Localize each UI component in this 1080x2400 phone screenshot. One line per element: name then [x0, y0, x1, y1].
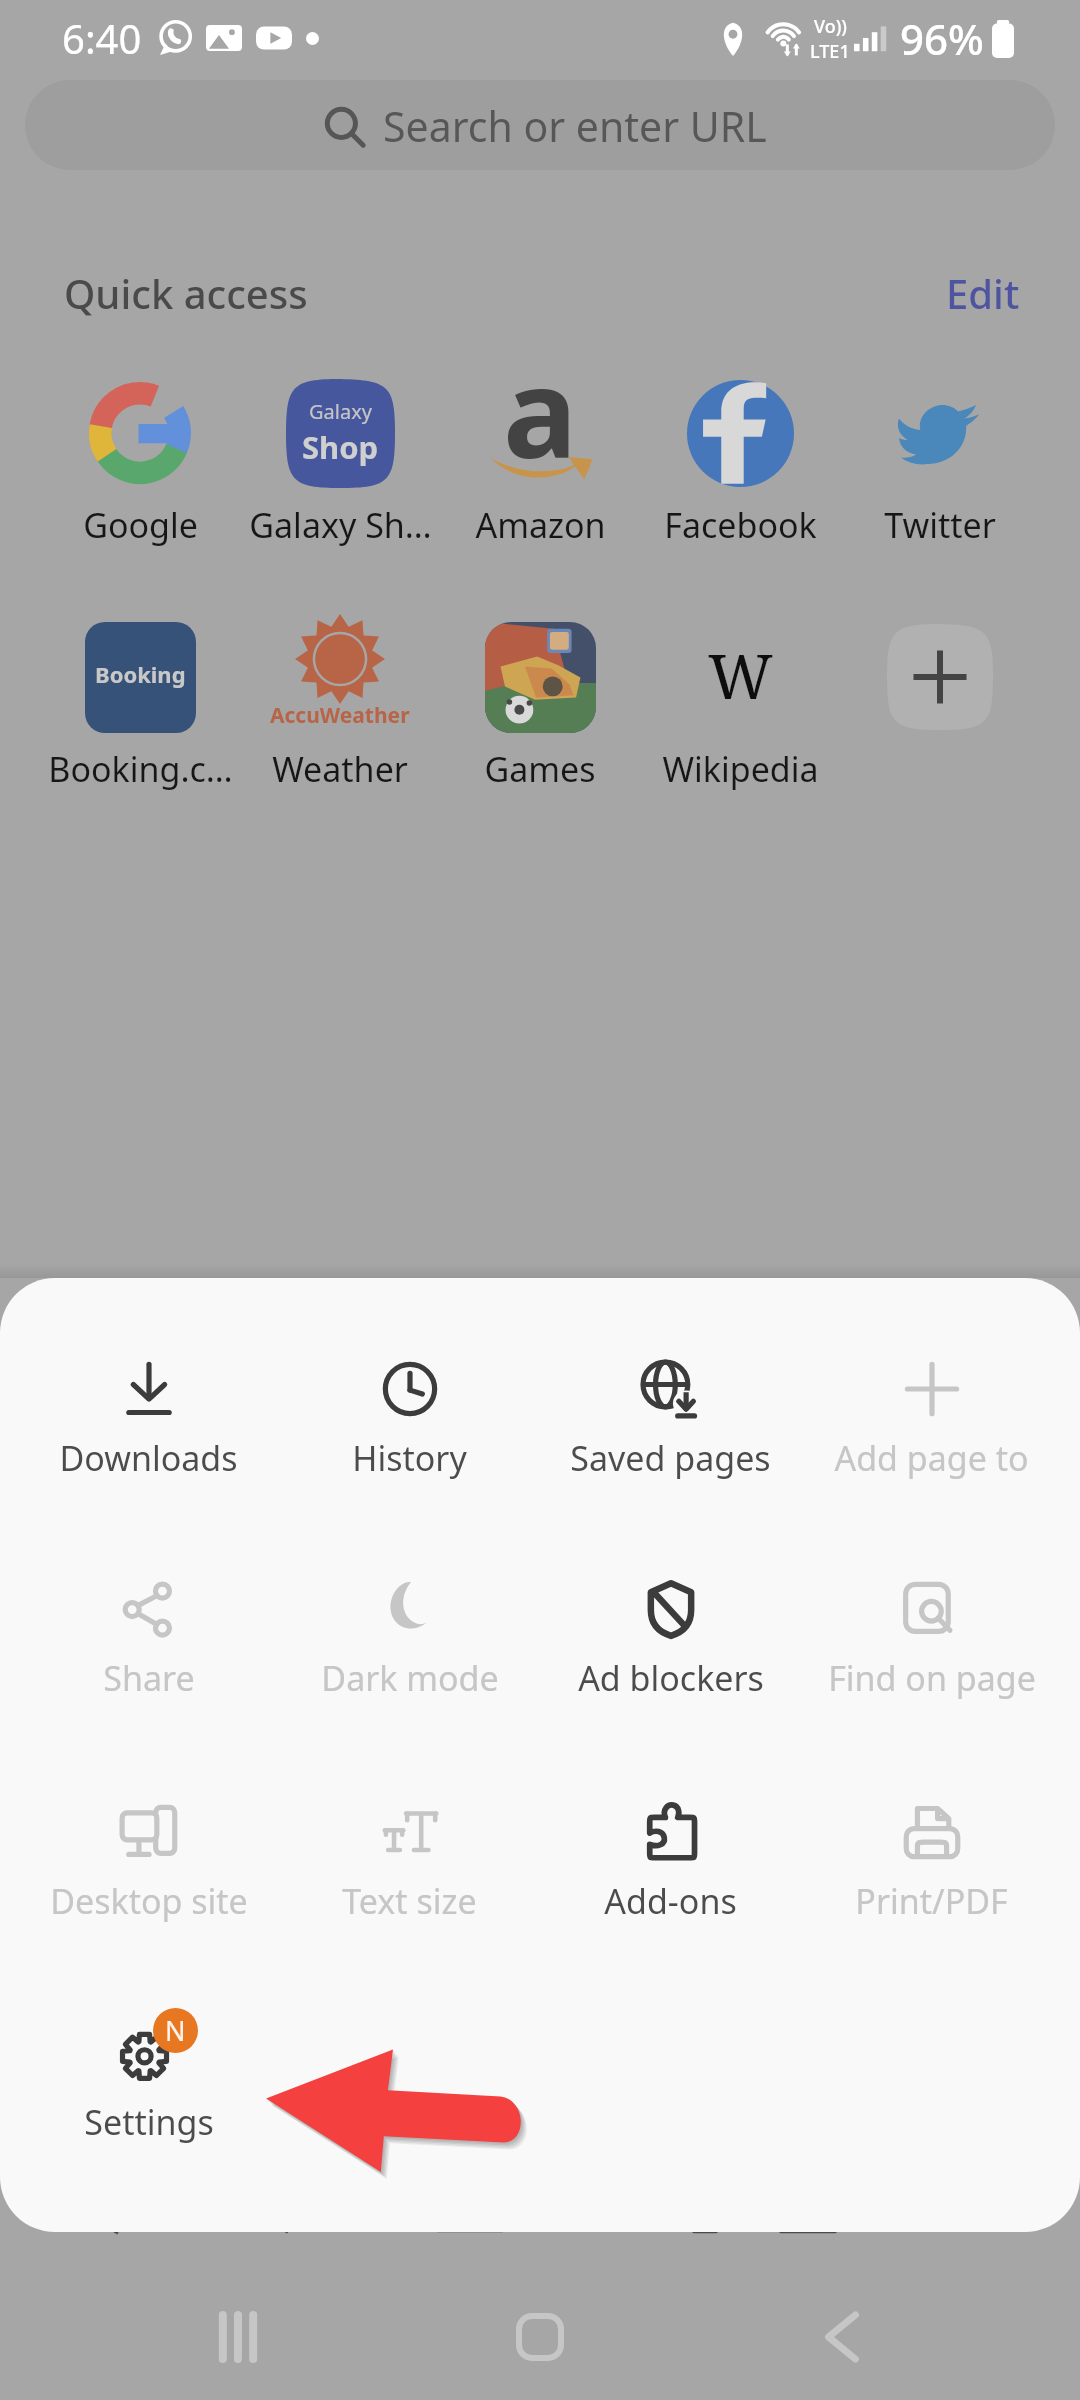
button[interactable]: Print/PDF	[801, 1788, 1062, 1924]
button[interactable]: Add-ons	[540, 1788, 801, 1924]
staticText: 96%	[900, 10, 984, 67]
staticText: Galaxy Sh…	[249, 502, 432, 548]
staticText: Galaxy	[309, 398, 372, 425]
staticText: Amazon	[475, 502, 606, 548]
staticText: Facebook	[664, 502, 817, 548]
button[interactable]: Text size	[279, 1788, 540, 1924]
staticText: Search or enter URL	[383, 98, 767, 154]
button[interactable]: a	[440, 371, 640, 548]
button[interactable]: Twitter	[840, 371, 1040, 548]
staticText: W	[708, 633, 773, 717]
button[interactable]: Quick access	[64, 266, 308, 320]
button[interactable]: Recent apps	[178, 2277, 298, 2397]
button[interactable]: Facebook	[640, 371, 840, 548]
staticText: AccuWeather	[270, 701, 410, 730]
staticText: Saved pages	[570, 1435, 771, 1481]
button[interactable]: History	[279, 1345, 540, 1481]
button[interactable]: Home	[480, 2277, 600, 2397]
staticText: Booking	[95, 659, 186, 689]
button[interactable]: Edit	[946, 266, 1020, 320]
staticText: Add page to	[834, 1435, 1029, 1481]
button[interactable]: Share	[18, 1565, 279, 1701]
staticText: LTE1	[810, 39, 850, 64]
button[interactable]: N	[18, 2009, 279, 2145]
button[interactable]: Dark mode	[279, 1565, 540, 1701]
staticText: Wikipedia	[662, 746, 819, 792]
button[interactable]: Desktop site	[18, 1788, 279, 1924]
button[interactable]: Back	[782, 2277, 902, 2397]
staticText: Quick access	[64, 266, 308, 320]
staticText: Dark mode	[321, 1655, 499, 1701]
staticText: Ad blockers	[578, 1655, 764, 1701]
staticText: Twitter	[884, 502, 996, 548]
button[interactable]: Downloads	[18, 1345, 279, 1481]
staticText: Games	[484, 746, 596, 792]
staticText: Share	[103, 1655, 195, 1701]
staticText: Weather	[272, 746, 408, 792]
staticText: Booking.c…	[48, 746, 233, 792]
staticText: Add-ons	[604, 1878, 737, 1924]
button[interactable]: Games	[440, 615, 640, 792]
staticText: History	[352, 1435, 467, 1481]
staticText: Desktop site	[50, 1878, 248, 1924]
staticText: Edit	[946, 266, 1020, 320]
button[interactable]: Google	[40, 371, 240, 548]
staticText: Text size	[342, 1878, 477, 1924]
button[interactable]: Booking	[40, 615, 240, 792]
button[interactable]: Galaxy	[240, 371, 440, 548]
button[interactable]	[840, 615, 1040, 746]
button[interactable]: Add page to	[801, 1345, 1062, 1481]
button[interactable]: Saved pages	[540, 1345, 801, 1481]
button[interactable]: Find on page	[801, 1565, 1062, 1701]
staticText: Find on page	[828, 1655, 1036, 1701]
staticText: Vo))	[814, 14, 847, 39]
button[interactable]: W	[640, 615, 840, 792]
staticText: 6:40	[62, 11, 142, 65]
staticText: Print/PDF	[855, 1878, 1008, 1924]
staticText: Google	[83, 502, 198, 548]
button[interactable]: Search or enter URL	[25, 80, 1055, 170]
staticText: Settings	[84, 2099, 214, 2145]
button[interactable]: Ad blockers	[540, 1565, 801, 1701]
staticText: a	[503, 325, 578, 494]
staticText: N	[165, 2012, 186, 2049]
button[interactable]: AccuWeather	[240, 615, 440, 792]
staticText: Downloads	[59, 1435, 238, 1481]
staticText: Shop	[302, 426, 379, 468]
